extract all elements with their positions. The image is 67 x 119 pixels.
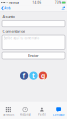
staticText: g (41, 71, 45, 80)
staticText: Asunto (2, 14, 14, 19)
staticText: Atrás (4, 6, 10, 10)
staticText: Enviar (28, 53, 39, 58)
button[interactable]: Perfil (33, 102, 50, 119)
staticText: Comentarios (2, 29, 25, 34)
staticText: Historial (20, 113, 31, 116)
staticText: f (23, 71, 26, 80)
button[interactable]: Atrás (0, 5, 12, 11)
staticText: Servicios (3, 113, 14, 116)
button[interactable]: Contacto (50, 102, 67, 119)
staticText: 14:06 (32, 1, 41, 4)
button[interactable]: Twitter (29, 71, 38, 80)
staticText: t (32, 71, 35, 80)
button[interactable]: Google Plus (39, 71, 47, 80)
staticText: 73% (55, 1, 62, 4)
button[interactable]: Historial (17, 102, 34, 119)
button[interactable]: Facebook (20, 71, 28, 80)
staticText: Contacto (53, 113, 65, 116)
staticText: Perfil (38, 113, 46, 116)
staticText: movistar (8, 1, 19, 4)
button[interactable]: Enviar (2, 52, 65, 59)
staticText: Escribe aquí tu comentario (4, 36, 40, 40)
button[interactable]: Servicios (0, 102, 17, 119)
button[interactable]: Contacto (60, 5, 67, 11)
